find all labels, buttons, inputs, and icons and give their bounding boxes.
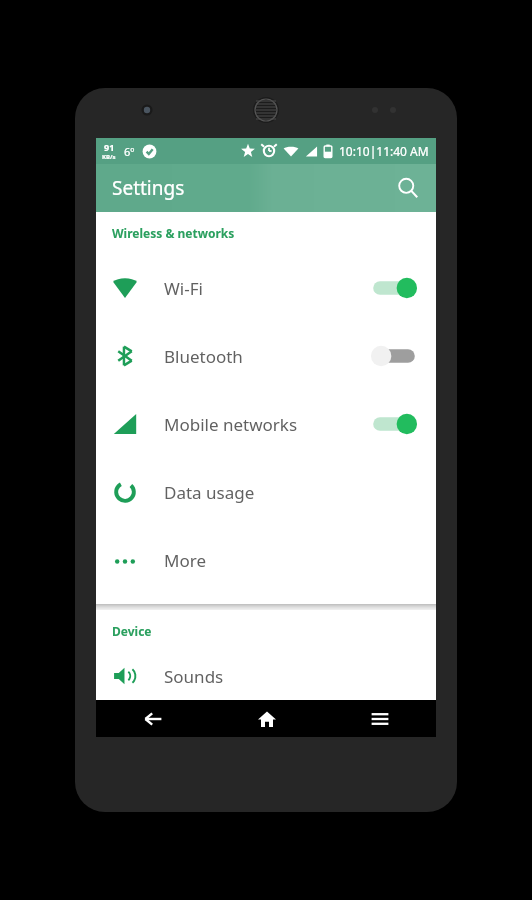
staticText: Mobile networks [164, 413, 298, 436]
button[interactable]: On [368, 407, 420, 441]
button[interactable]: Home [210, 700, 323, 737]
staticText: Bluetooth [164, 345, 243, 368]
staticText: 10:10|11:40 AM [339, 143, 429, 159]
button[interactable]: Mobile networks [96, 390, 436, 458]
button[interactable]: Recents [323, 700, 436, 737]
staticText: Data usage [164, 481, 255, 504]
button[interactable]: Sounds [96, 652, 436, 700]
button[interactable]: More [96, 526, 436, 594]
button[interactable]: Wi-Fi [96, 254, 436, 322]
button[interactable]: Back [96, 700, 210, 737]
button[interactable]: Off [368, 339, 420, 373]
staticText: More [164, 549, 206, 572]
staticText: 6º [124, 144, 135, 159]
staticText: KB/s [102, 153, 116, 161]
button[interactable]: Data usage [96, 458, 436, 526]
button[interactable]: Search [388, 168, 428, 208]
staticText: Device [112, 623, 152, 639]
button[interactable]: Bluetooth [96, 322, 436, 390]
staticText: Wi-Fi [164, 277, 203, 300]
staticText: 91 [104, 141, 115, 153]
button[interactable]: On [368, 271, 420, 305]
staticText: Wireless & networks [112, 225, 235, 241]
staticText: Sounds [164, 665, 224, 688]
staticText: Settings [112, 175, 185, 201]
